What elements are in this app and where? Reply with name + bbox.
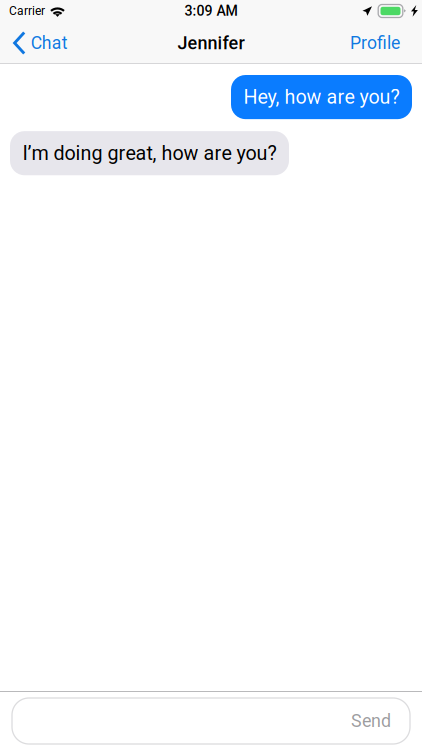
- button[interactable]: Send: [12, 698, 410, 744]
- button[interactable]: Chat: [5, 22, 76, 64]
- staticText: Jennifer: [177, 32, 244, 54]
- staticText: Carrier: [9, 4, 45, 18]
- staticText: I’m doing great, how are you?: [22, 142, 276, 165]
- staticText: Chat: [31, 33, 68, 53]
- staticText: 3:09 AM: [184, 3, 237, 19]
- staticText: Profile: [350, 33, 400, 53]
- staticText: Send: [351, 710, 391, 731]
- button[interactable]: Profile: [340, 24, 410, 62]
- staticText: Hey, how are you?: [243, 85, 399, 109]
